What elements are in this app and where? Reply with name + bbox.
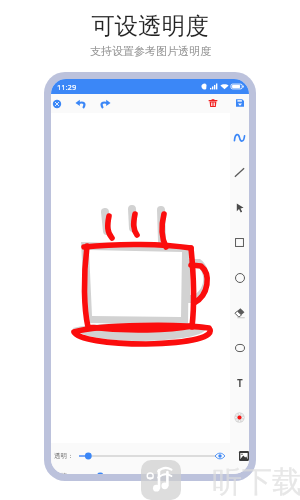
button[interactable] bbox=[79, 451, 216, 461]
staticText: 听下载 bbox=[212, 463, 300, 500]
button[interactable]: Close bbox=[52, 99, 62, 109]
button[interactable]: Line bbox=[230, 155, 249, 190]
staticText: T bbox=[237, 376, 243, 390]
staticText: 透明： bbox=[54, 452, 74, 460]
button[interactable]: Rectangle bbox=[230, 225, 249, 260]
button[interactable]: 透明： bbox=[51, 448, 79, 464]
button[interactable]: Ellipse bbox=[230, 330, 249, 365]
button[interactable] bbox=[79, 471, 216, 474]
button[interactable]: Undo bbox=[75, 98, 86, 109]
button[interactable]: 画笔： bbox=[51, 468, 79, 474]
button[interactable]: Redo bbox=[100, 98, 111, 109]
staticText: 11:29 bbox=[57, 82, 77, 92]
button[interactable]: Text bbox=[230, 365, 249, 400]
staticText: 支持设置参考图片透明度 bbox=[90, 44, 211, 58]
button[interactable]: Pen bbox=[230, 120, 249, 155]
button[interactable]: Circle bbox=[230, 260, 249, 295]
button[interactable]: Colour bbox=[230, 400, 249, 435]
button[interactable]: Save bbox=[235, 98, 245, 108]
staticText: 画笔： bbox=[54, 472, 74, 474]
button[interactable]: Select bbox=[230, 190, 249, 225]
button[interactable]: Eraser bbox=[230, 295, 249, 330]
staticText: 可设透明度 bbox=[91, 11, 209, 41]
button[interactable]: Toggle reference visibility bbox=[215, 451, 225, 461]
button[interactable]: Choose reference image bbox=[239, 451, 249, 461]
button[interactable]: Delete bbox=[208, 98, 218, 108]
